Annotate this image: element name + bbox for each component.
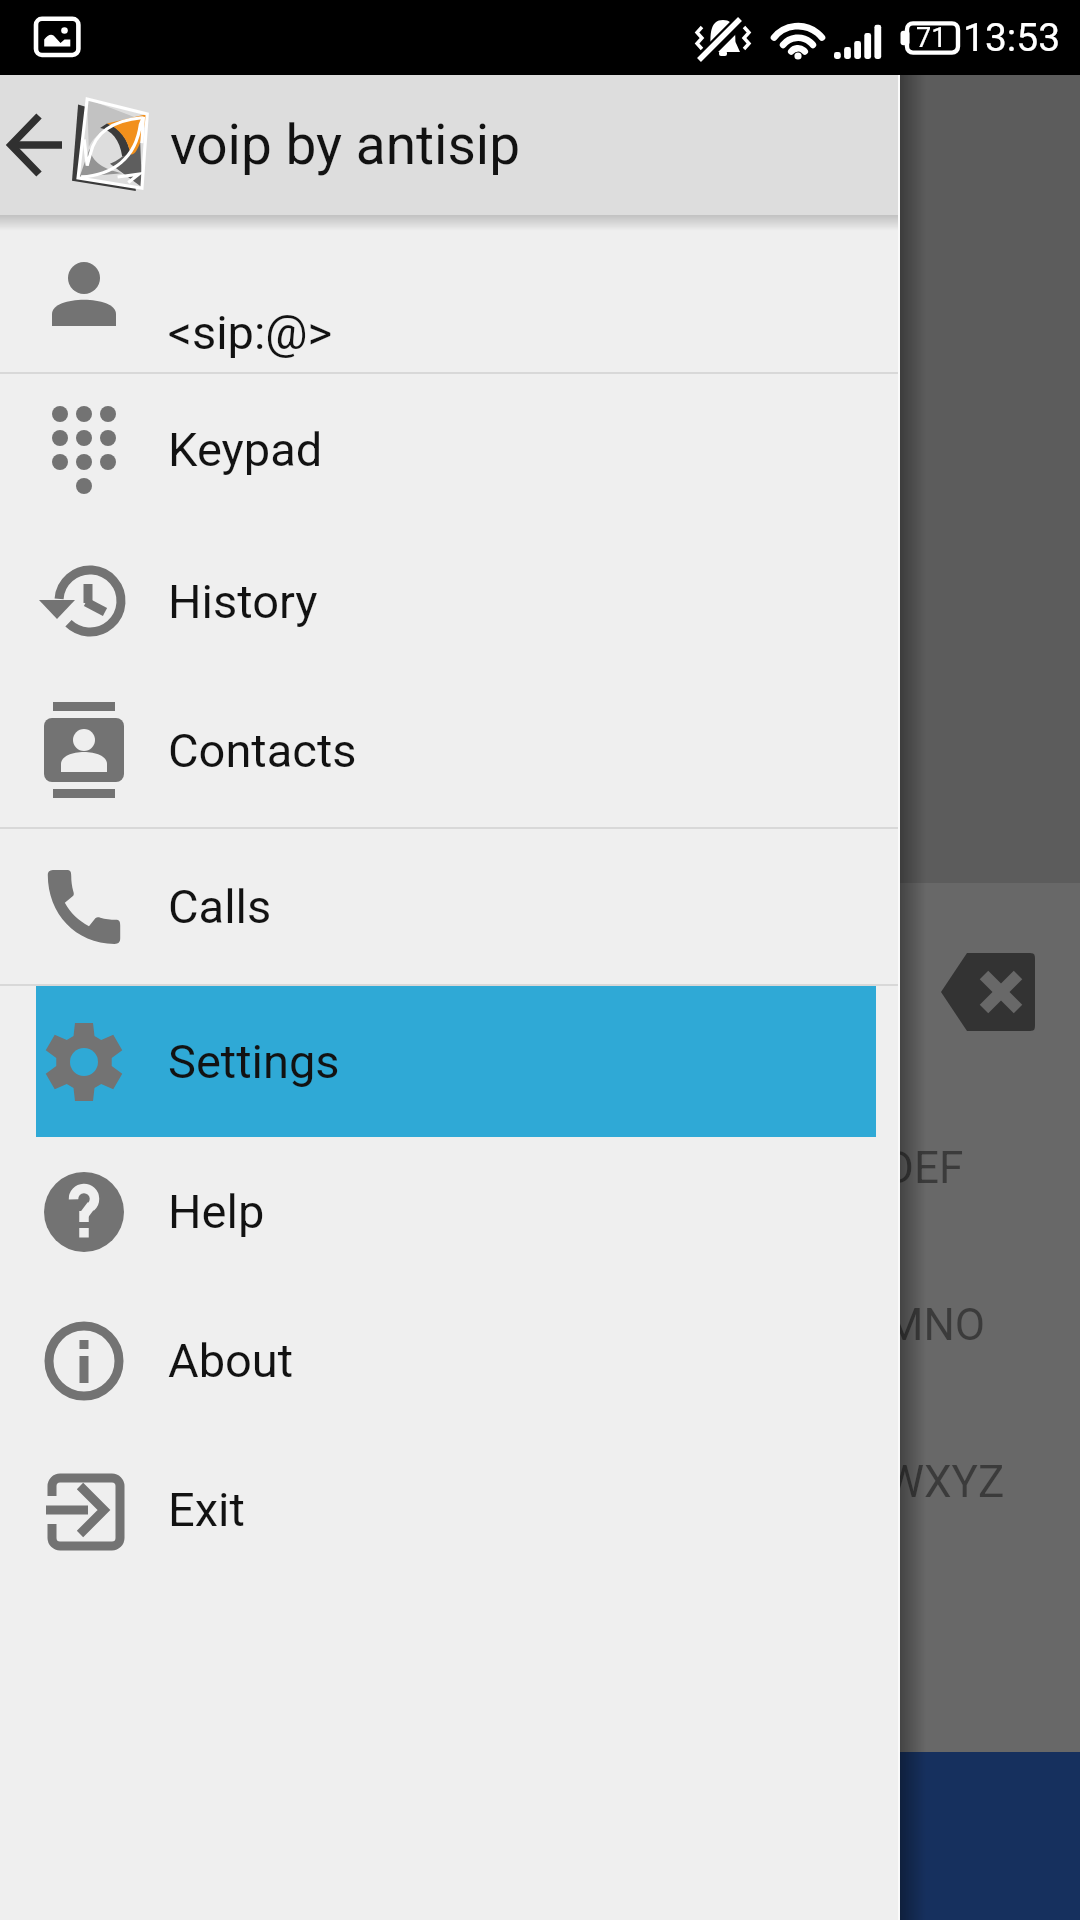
- staticText: 71: [916, 22, 947, 54]
- button[interactable]: Calls: [0, 829, 900, 984]
- staticText: Settings: [168, 1034, 340, 1089]
- staticText: History: [168, 574, 318, 629]
- staticText: About: [168, 1333, 294, 1388]
- button[interactable]: Settings: [0, 986, 900, 1137]
- button[interactable]: Help: [0, 1137, 900, 1286]
- staticText: voip by antisip: [170, 113, 521, 177]
- button[interactable]: Navigate up: [0, 75, 72, 215]
- staticText: Contacts: [168, 723, 357, 778]
- staticText: Calls: [168, 879, 272, 934]
- staticText: WXYZ: [885, 1456, 1005, 1508]
- button[interactable]: Contacts: [0, 677, 900, 827]
- button[interactable]: History: [0, 525, 900, 677]
- button[interactable]: <sip:@>: [0, 215, 900, 372]
- staticText: Help: [168, 1184, 265, 1239]
- button[interactable]: Exit: [0, 1435, 900, 1584]
- staticText: Keypad: [168, 422, 323, 477]
- staticText: DEF: [885, 1142, 964, 1194]
- button[interactable]: Backspace: [898, 898, 1080, 1086]
- button[interactable]: Keypad: [0, 374, 900, 525]
- staticText: Exit: [168, 1482, 245, 1537]
- staticText: MNO: [885, 1299, 986, 1351]
- staticText: 13:53: [963, 15, 1061, 61]
- button[interactable]: About: [0, 1286, 900, 1435]
- staticText: <sip:@>: [168, 305, 333, 360]
